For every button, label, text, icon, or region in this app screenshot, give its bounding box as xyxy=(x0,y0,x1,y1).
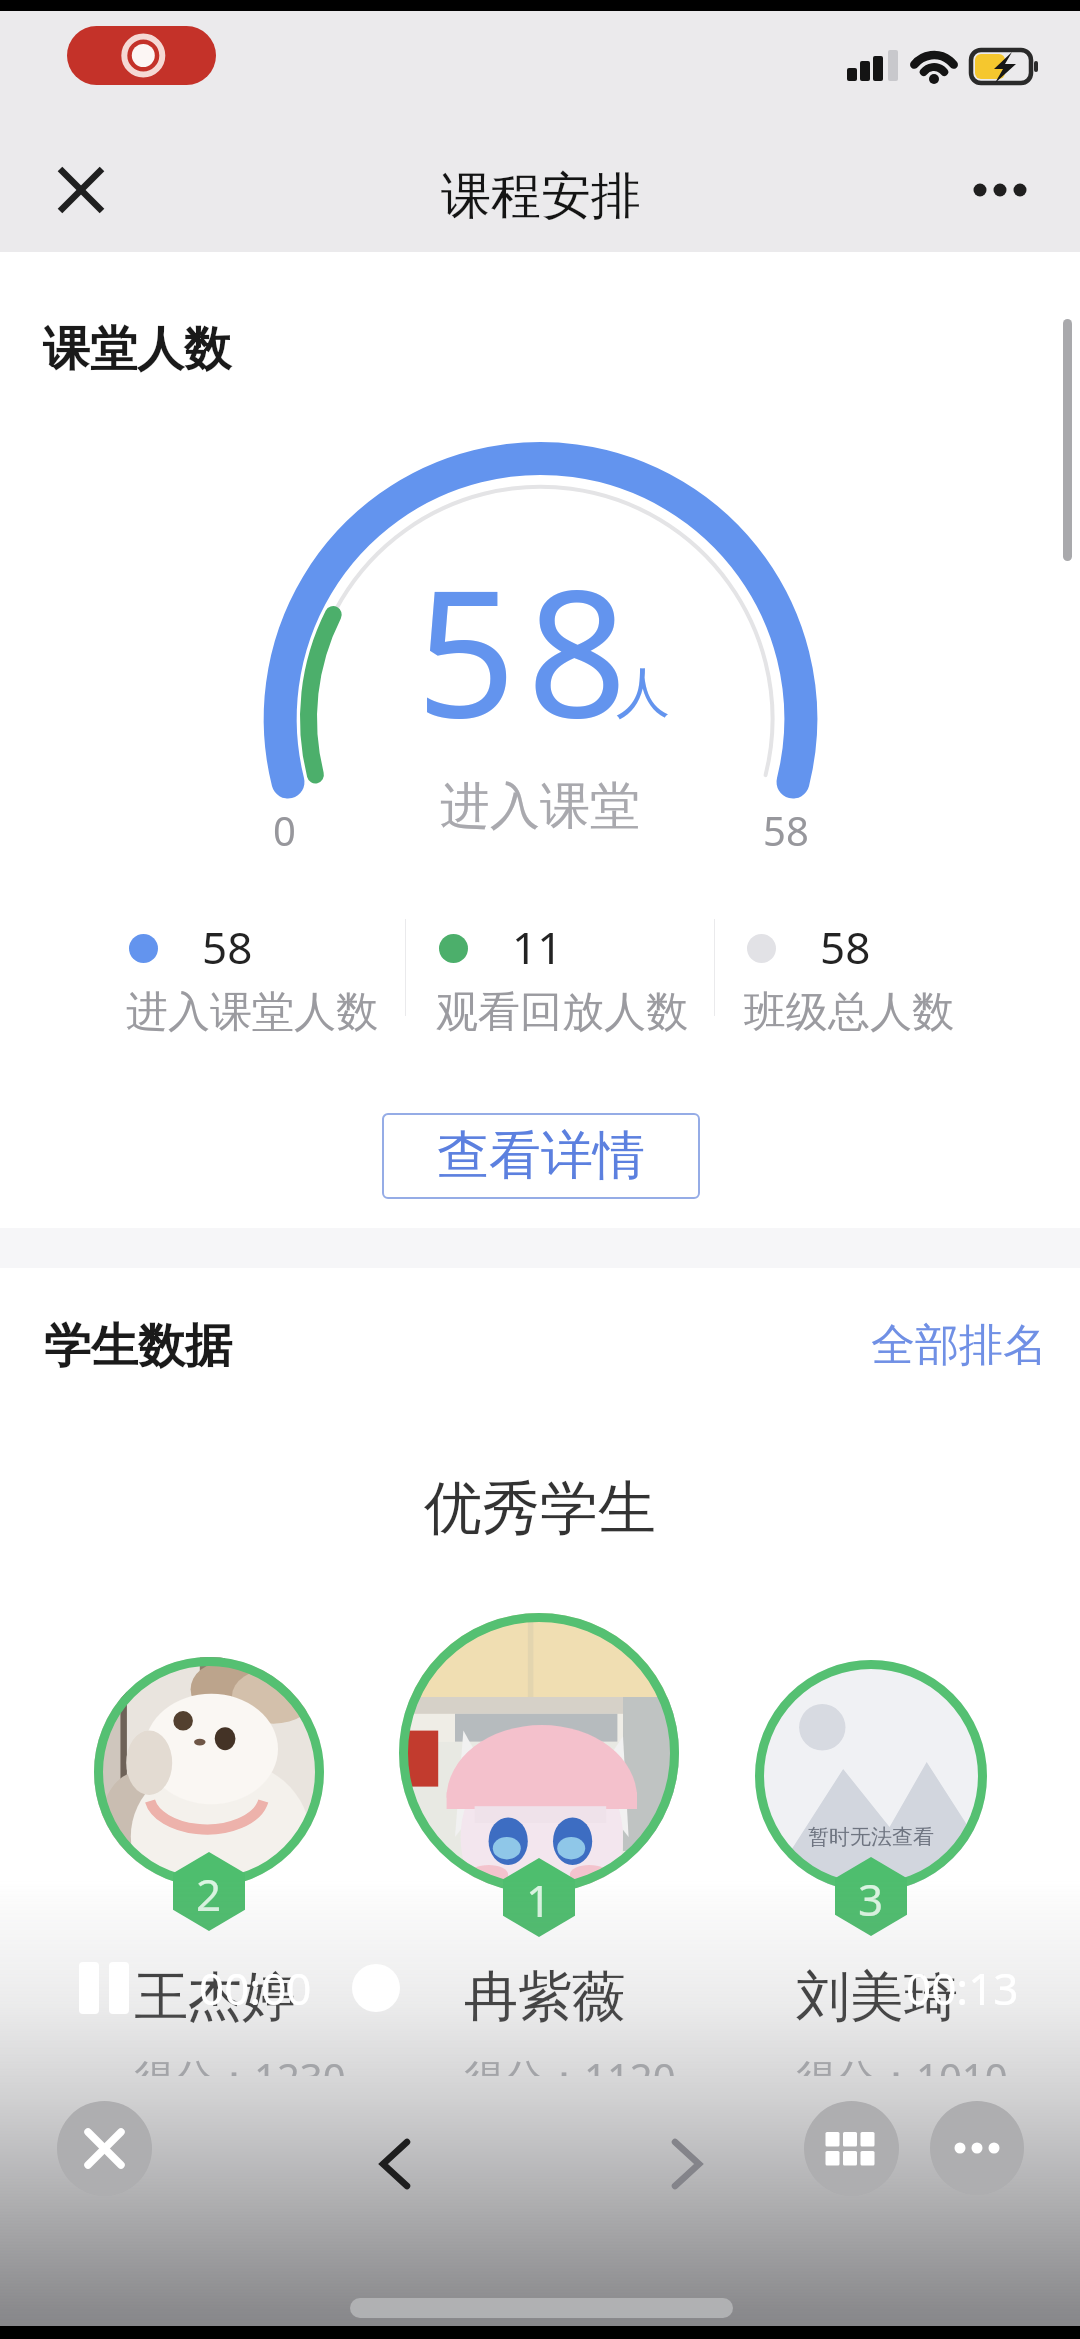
staticText: 冉紫薇 xyxy=(464,1963,626,2031)
staticText: 查看详情 xyxy=(437,1123,645,1189)
staticText: 0 xyxy=(273,803,296,857)
staticText: 11 xyxy=(512,917,563,977)
staticText: 00:00 xyxy=(199,1958,312,2018)
staticText: 00:13 xyxy=(906,1958,1019,2018)
staticText: 58 xyxy=(416,530,639,768)
staticText: 刘美琦 xyxy=(796,1963,958,2031)
button[interactable]: 查看详情 xyxy=(382,1113,700,1199)
staticText: 得分：1230 xyxy=(134,2050,346,2076)
button[interactable]: Student rank 1 xyxy=(399,1613,679,1893)
button[interactable]: Recording xyxy=(67,26,216,85)
staticText: 58 xyxy=(202,917,253,977)
button[interactable]: More options xyxy=(950,140,1050,240)
staticText: 暂时无法查看 xyxy=(808,1824,934,1850)
button[interactable]: 58 xyxy=(714,912,1023,1042)
staticText: 得分：1120 xyxy=(464,2050,676,2076)
button[interactable]: Close xyxy=(31,140,131,240)
staticText: 学生数据 xyxy=(44,1317,232,1376)
button[interactable]: Forward xyxy=(637,2114,737,2214)
staticText: 全部排名 xyxy=(871,1318,1047,1373)
button[interactable]: Close recording xyxy=(57,2101,152,2196)
staticText: 进入课堂 xyxy=(0,775,1080,838)
button[interactable]: Back xyxy=(345,2114,445,2214)
staticText: 优秀学生 xyxy=(0,1472,1080,1545)
staticText: 1 xyxy=(526,1870,552,1930)
button[interactable]: 58 xyxy=(96,912,405,1042)
button[interactable]: Apps xyxy=(804,2101,899,2196)
staticText: 班级总人数 xyxy=(744,986,954,1039)
staticText: 3 xyxy=(858,1869,884,1929)
button[interactable]: Student rank 3 xyxy=(755,1660,987,1892)
staticText: 课堂人数 xyxy=(43,320,231,379)
staticText: 观看回放人数 xyxy=(436,986,688,1039)
staticText: 58 xyxy=(820,917,871,977)
staticText: 58 xyxy=(763,803,809,857)
button[interactable]: 11 xyxy=(406,912,715,1042)
staticText: 王杰婷 xyxy=(134,1963,296,2031)
staticText: 2 xyxy=(196,1864,222,1924)
button[interactable]: Student rank 2 xyxy=(94,1657,324,1887)
button[interactable]: 全部排名 xyxy=(861,1309,1057,1381)
staticText: 人 xyxy=(616,659,670,727)
staticText: 得分：1010 xyxy=(796,2050,1008,2076)
staticText: 课程安排 xyxy=(441,165,641,228)
staticText: 进入课堂人数 xyxy=(126,986,378,1039)
button[interactable]: More xyxy=(930,2101,1024,2195)
